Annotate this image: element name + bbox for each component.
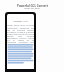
staticText: Lorem ipsum dolor sit amet consectetur a… xyxy=(7,24,34,43)
staticText: Yesterday 11:04 xyxy=(13,20,28,23)
staticText: Powerful GCL Convert xyxy=(17,4,48,8)
staticText: ready for back xyxy=(24,7,40,10)
